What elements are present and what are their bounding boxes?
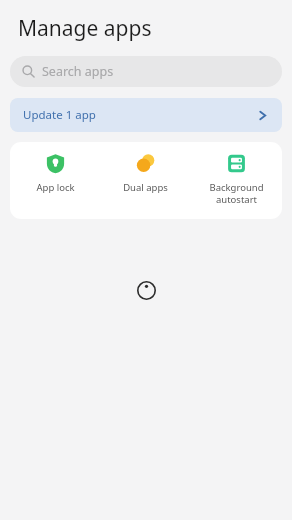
staticText: Background autostart [209,181,264,206]
staticText: Update 1 app [23,107,96,123]
staticText: App lock [36,181,75,194]
button[interactable]: Background autostart [191,142,282,206]
staticText: Dual apps [123,181,168,194]
button[interactable]: App lock [10,142,100,194]
other: Open updates [257,110,268,121]
staticText: Manage apps [18,14,152,43]
staticText: Search apps [42,63,114,80]
button[interactable]: Dual apps [100,142,191,194]
button[interactable]: Search apps [10,56,282,87]
button[interactable]: Update 1 app [10,98,282,132]
other: Loading [137,281,156,300]
